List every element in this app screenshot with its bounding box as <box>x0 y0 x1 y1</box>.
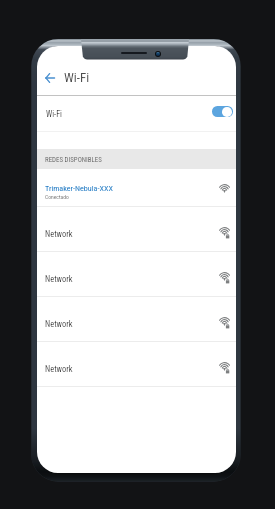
staticText: Network <box>45 319 73 329</box>
staticText: Network <box>45 229 73 239</box>
staticText: Wi-Fi <box>46 109 62 119</box>
button[interactable]: Back <box>41 69 59 87</box>
button[interactable]: Wi-Fi <box>37 96 236 131</box>
button[interactable]: Network <box>37 342 236 386</box>
staticText: Trimaker-Nebula-XXX <box>45 183 113 192</box>
staticText: Wi-Fi <box>64 70 90 85</box>
button[interactable]: Network <box>37 252 236 296</box>
staticText: Network <box>45 364 73 374</box>
button[interactable]: Network <box>37 207 236 251</box>
button[interactable]: Network <box>37 297 236 341</box>
staticText: Network <box>45 274 73 284</box>
button[interactable]: Wi-Fi toggle <box>212 106 233 117</box>
button[interactable]: Trimaker-Nebula-XXX <box>37 169 236 206</box>
staticText: REDES DISPONIBLES <box>45 156 102 164</box>
staticText: Conectado <box>45 194 69 201</box>
